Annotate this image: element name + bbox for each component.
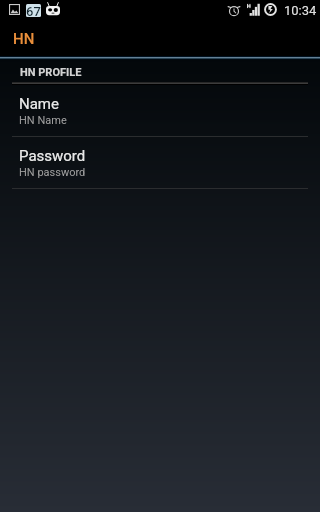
other: Charging xyxy=(264,3,277,16)
staticText: 67 xyxy=(26,4,41,17)
button[interactable]: Notifications: 67 xyxy=(26,4,41,17)
other: Screenshot xyxy=(9,4,20,15)
staticText: 10:34 xyxy=(284,3,317,18)
other: Mobile signal xyxy=(246,3,261,16)
staticText: HN PROFILE xyxy=(20,66,82,79)
staticText: Password xyxy=(19,147,86,165)
button[interactable]: Password xyxy=(0,136,320,188)
other: Alarm set xyxy=(228,3,240,16)
staticText: Name xyxy=(19,95,59,113)
staticText: HN Name xyxy=(19,114,67,127)
other: CyanogenMod xyxy=(46,2,60,16)
button[interactable]: Name xyxy=(0,84,320,136)
staticText: HN password xyxy=(19,166,86,179)
button[interactable]: HN xyxy=(0,19,320,56)
staticText: HN xyxy=(13,30,35,48)
